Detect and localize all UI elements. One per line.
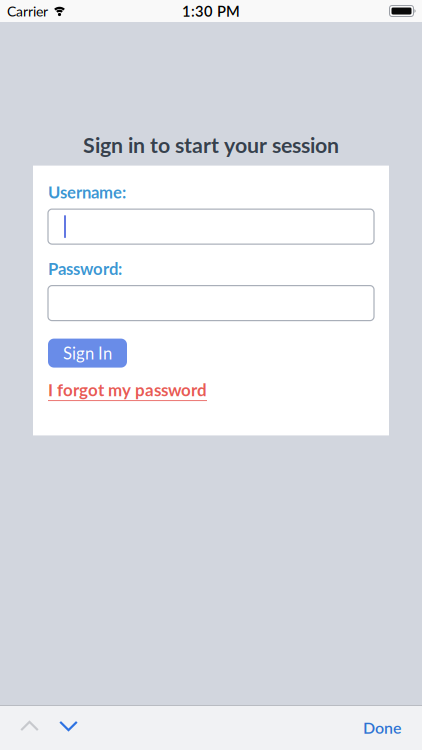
button[interactable]: Username: [48, 209, 374, 244]
staticText: Done: [363, 718, 401, 737]
button[interactable]: Next field: [39, 716, 78, 739]
staticText: Carrier: [7, 3, 48, 19]
button[interactable]: Sign In: [48, 339, 127, 368]
button[interactable]: Password: [48, 286, 374, 321]
button[interactable]: I forgot my password: [48, 380, 207, 400]
staticText: Username:: [48, 182, 126, 202]
staticText: Sign In: [63, 343, 112, 363]
button[interactable]: Done: [363, 718, 422, 738]
staticText: Sign in to start your session: [83, 132, 339, 158]
staticText: 1:30 PM: [182, 2, 240, 20]
staticText: I forgot my password: [48, 380, 207, 400]
staticText: Password:: [48, 259, 122, 279]
button[interactable]: Previous field: [0, 716, 39, 739]
